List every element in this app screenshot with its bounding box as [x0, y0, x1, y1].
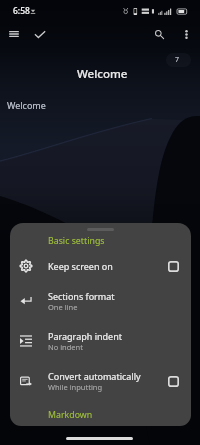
staticText: 7: [175, 55, 180, 65]
staticText: 6:58: [13, 5, 30, 17]
staticText: One line: [48, 302, 78, 312]
staticText: Basic settings: [48, 235, 105, 247]
button[interactable]: Paragraph indent: [10, 321, 191, 361]
button[interactable]: 7: [166, 53, 191, 67]
button[interactable]: Sections format: [10, 281, 191, 321]
staticText: Convert automatically: [48, 370, 141, 382]
button[interactable]: Keep screen on: [10, 251, 191, 281]
button[interactable]: Navigation menu: [4, 25, 23, 44]
staticText: While inputting: [48, 382, 103, 392]
button[interactable]: Convert automatically: [10, 361, 191, 401]
staticText: No indent: [48, 342, 83, 352]
button[interactable]: Done: [30, 25, 49, 44]
button[interactable]: Search: [150, 25, 169, 44]
staticText: Sections format: [48, 290, 115, 302]
staticText: Markdown: [48, 409, 93, 421]
staticText: Welcome: [77, 66, 128, 82]
button[interactable]: More options: [177, 25, 196, 44]
staticText: Keep screen on: [48, 260, 113, 272]
staticText: Paragraph indent: [48, 330, 122, 342]
staticText: Welcome: [7, 99, 46, 111]
